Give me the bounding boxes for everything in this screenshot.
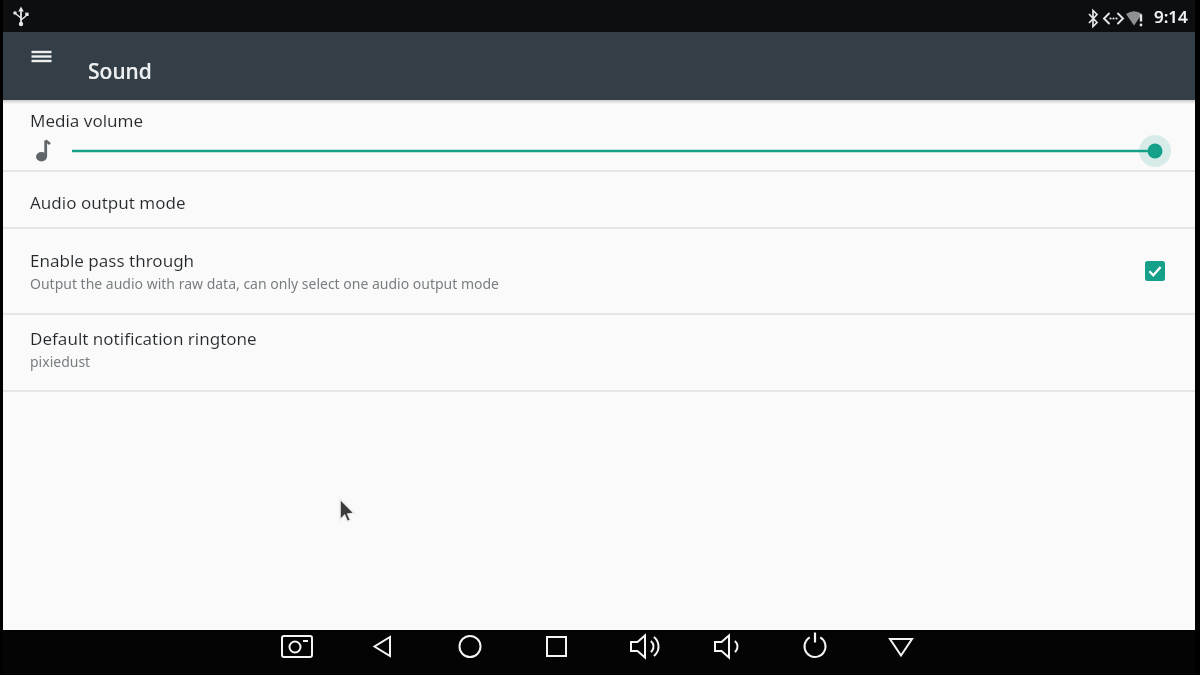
staticText: 9:14 [1154, 5, 1188, 28]
button[interactable]: Audio output mode [3, 172, 1195, 227]
button[interactable] [534, 630, 580, 675]
button[interactable]: Media volume [3, 100, 1195, 170]
staticText: Output the audio with raw data, can only… [30, 274, 499, 293]
button[interactable] [1145, 261, 1165, 281]
staticText: Sound [88, 57, 152, 86]
staticText: Enable pass through [30, 249, 195, 272]
staticText: Media volume [30, 109, 144, 132]
button[interactable]: Enable pass through [3, 229, 1195, 313]
button[interactable] [793, 630, 839, 675]
button[interactable] [361, 630, 407, 675]
button[interactable]: Default notification ringtone [3, 315, 1195, 390]
button[interactable] [447, 630, 493, 675]
staticText: Default notification ringtone [30, 327, 257, 350]
staticText: pixiedust [30, 352, 91, 371]
button[interactable] [620, 630, 666, 675]
button[interactable] [707, 630, 753, 675]
button[interactable] [880, 630, 926, 675]
staticText: Audio output mode [30, 191, 186, 214]
button[interactable] [21, 41, 61, 81]
button[interactable] [274, 630, 320, 675]
